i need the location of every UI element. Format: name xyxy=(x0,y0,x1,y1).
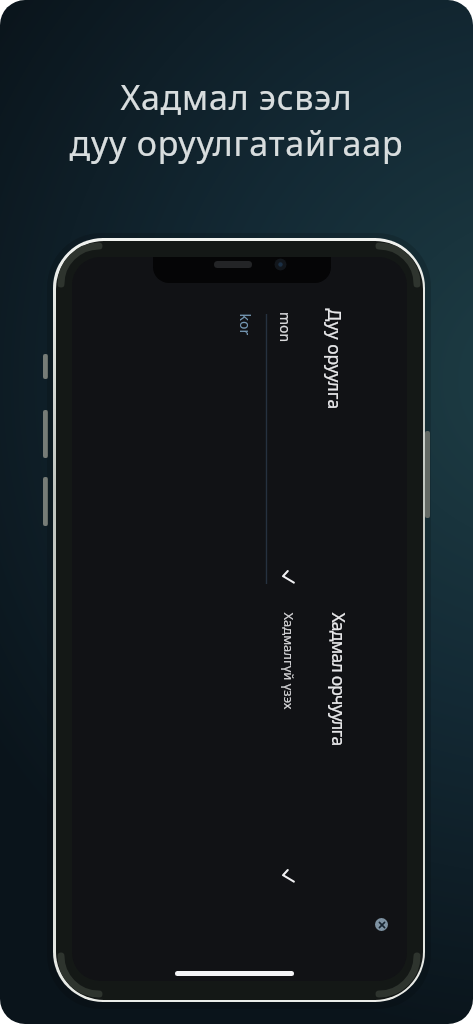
staticText: Хадмал орчуулга xyxy=(326,612,350,745)
button[interactable] xyxy=(280,569,296,585)
staticText: Дуу оруулга xyxy=(322,308,346,409)
button[interactable] xyxy=(280,868,296,884)
button[interactable]: kor xyxy=(235,313,254,335)
button[interactable]: Хадмалгүй үзэх xyxy=(279,612,297,709)
button[interactable]: mon xyxy=(276,312,295,343)
staticText: Хадмал эсвэл дуу оруулгатайгаар xyxy=(0,74,473,166)
button[interactable] xyxy=(375,918,388,931)
